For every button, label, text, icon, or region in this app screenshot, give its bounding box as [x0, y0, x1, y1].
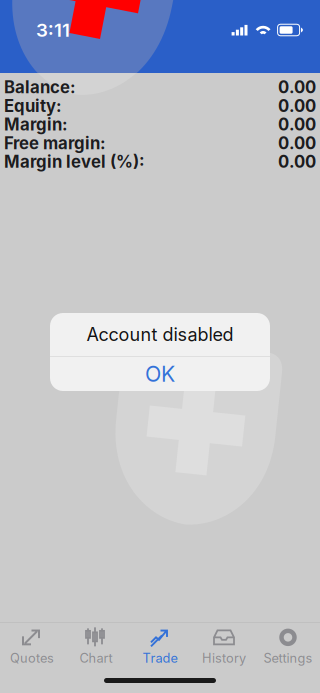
staticText: Chart — [79, 650, 112, 666]
staticText: OK — [145, 361, 175, 387]
staticText: Quotes — [10, 650, 54, 666]
staticText: 3:11 — [36, 19, 70, 41]
button[interactable]: Settings — [256, 618, 320, 674]
staticText: Settings — [263, 650, 312, 666]
staticText: 0.00 — [278, 114, 316, 135]
staticText: Account disabled — [86, 324, 233, 345]
button[interactable]: Quotes — [0, 618, 64, 674]
staticText: 0.00 — [278, 133, 316, 153]
button[interactable]: History — [192, 618, 256, 674]
staticText: 0.00 — [278, 96, 316, 116]
button[interactable]: Trade — [128, 618, 192, 674]
staticText: 0.00 — [278, 77, 316, 97]
staticText: 0.00 — [278, 152, 316, 172]
staticText: Margin: — [4, 114, 68, 135]
staticText: Free margin: — [4, 133, 106, 153]
button[interactable]: Chart — [64, 618, 128, 674]
staticText: Trade — [142, 650, 177, 666]
staticText: Equity: — [4, 96, 62, 116]
button[interactable]: OK — [50, 357, 270, 391]
staticText: Margin level (%): — [4, 152, 145, 172]
staticText: History — [202, 650, 246, 666]
staticText: Balance: — [4, 77, 76, 97]
